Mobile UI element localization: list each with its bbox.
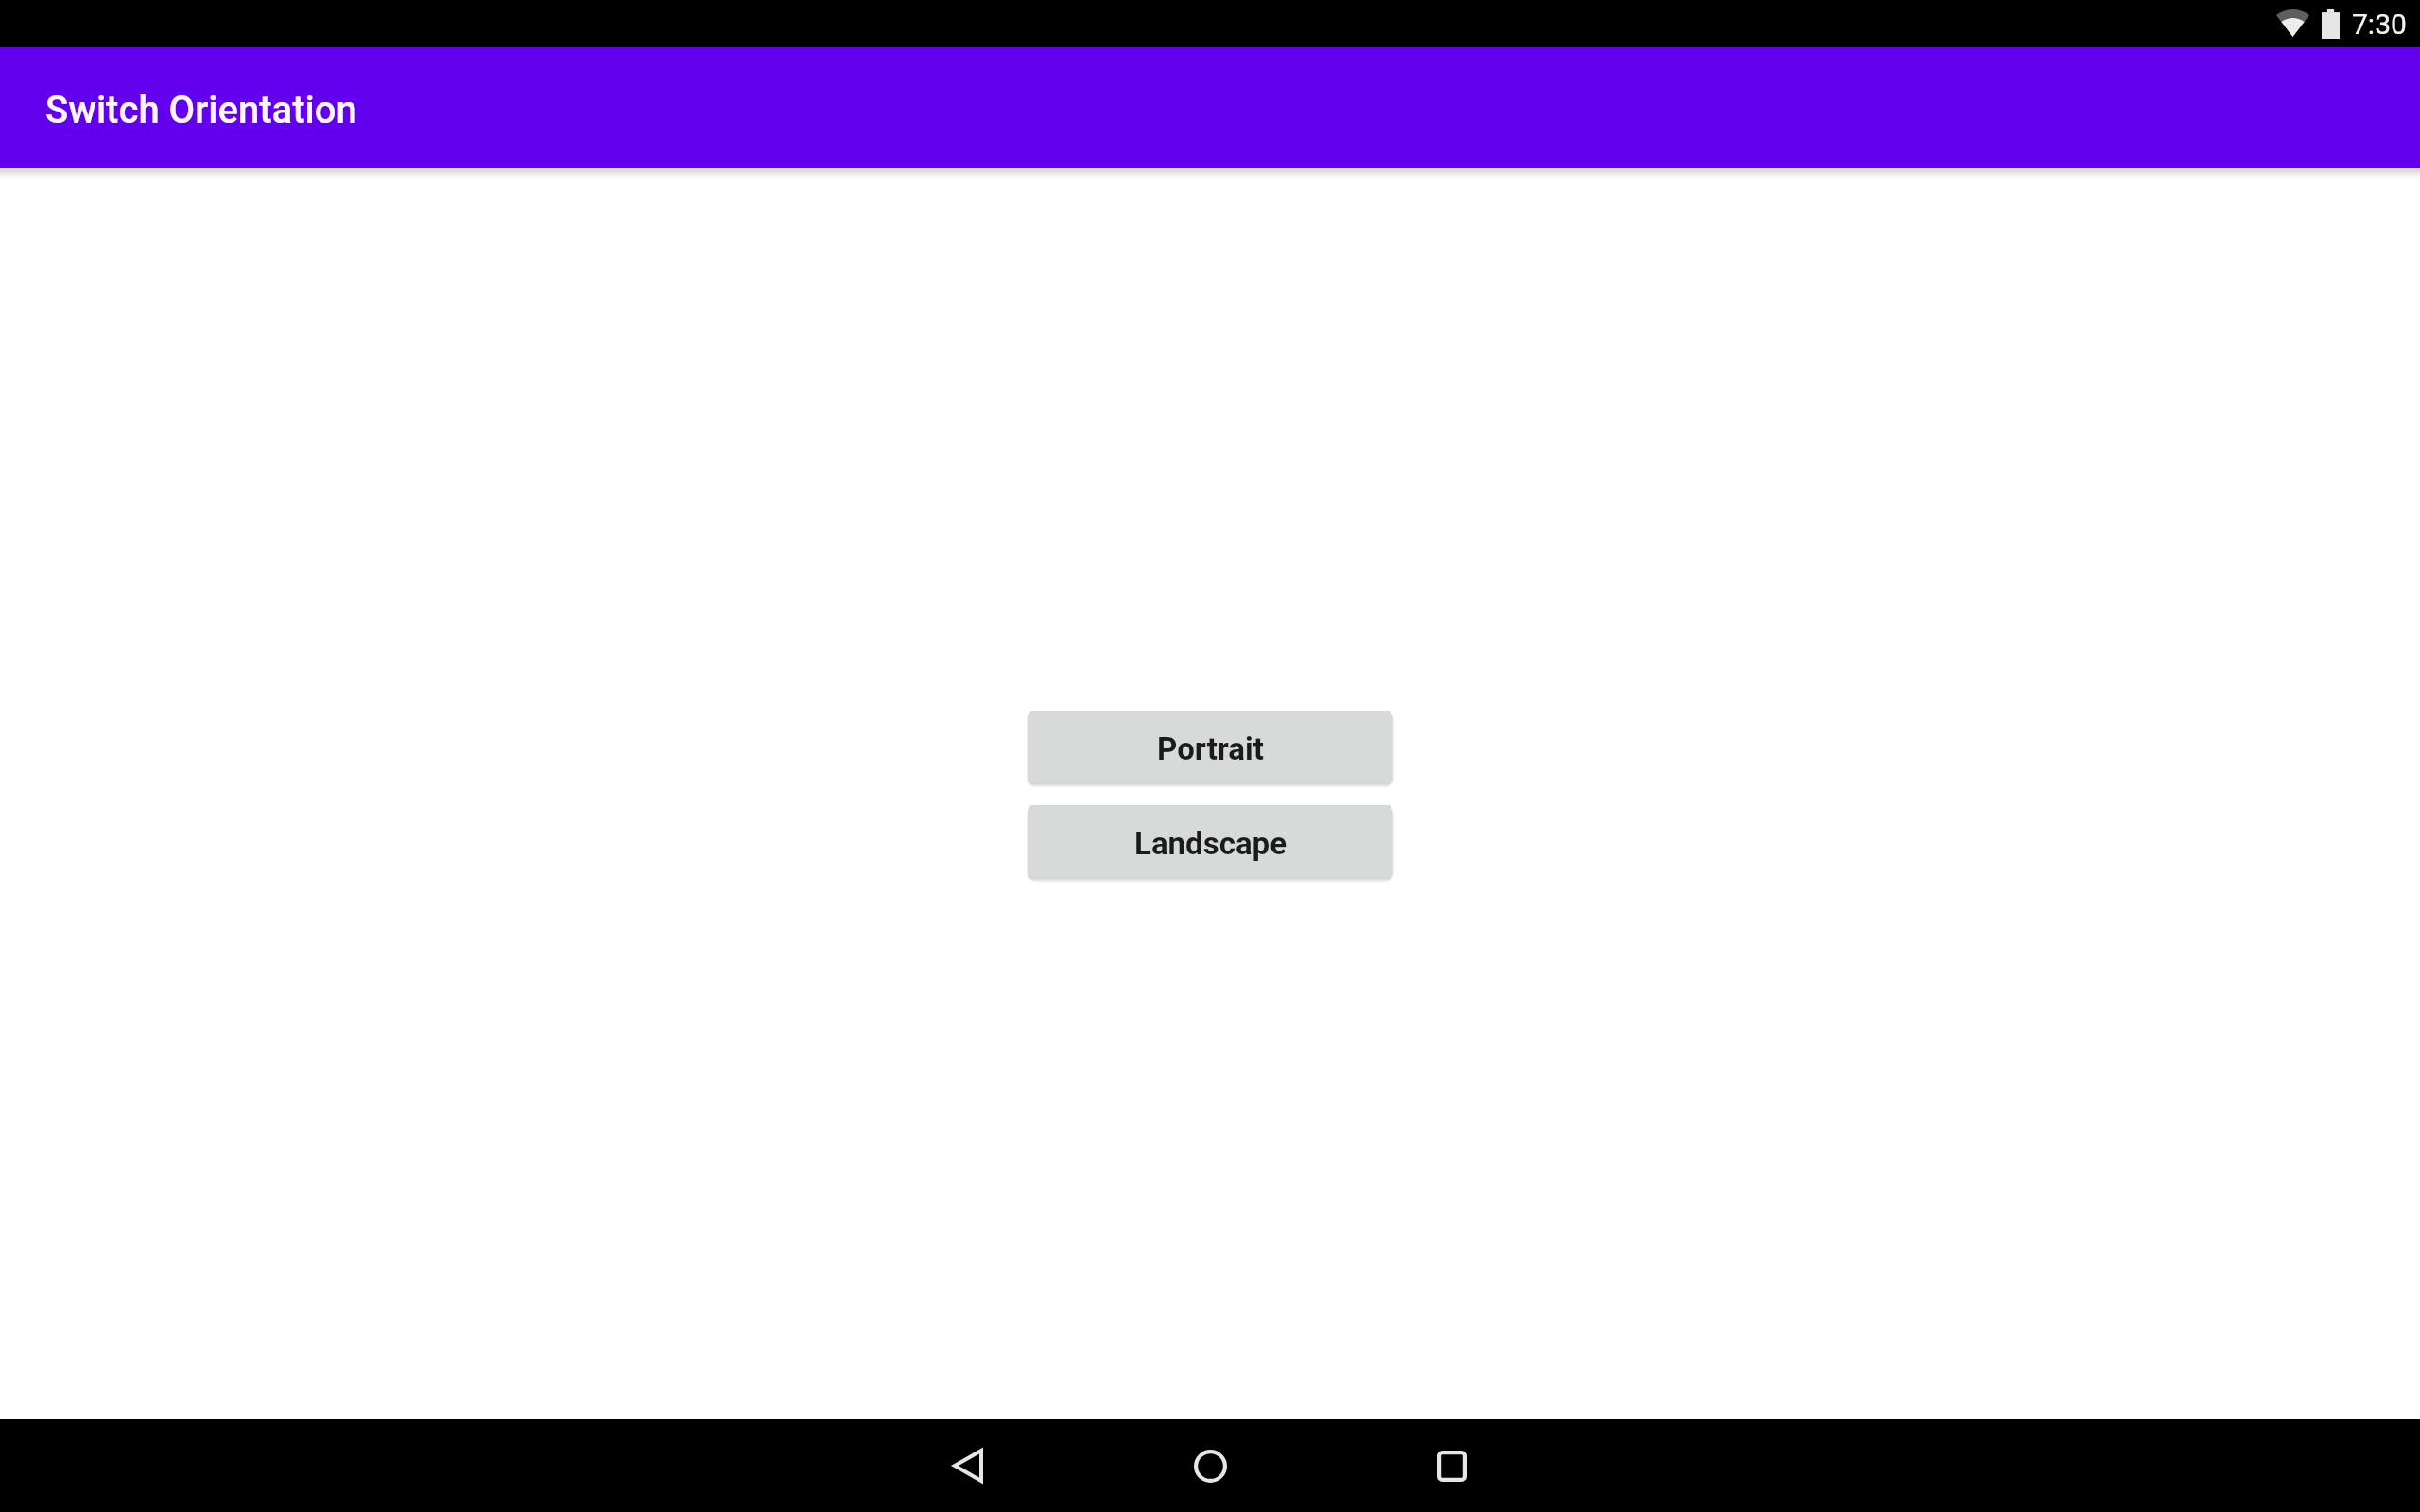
button[interactable]: Recent apps xyxy=(1407,1420,1497,1511)
staticText: 7:30 xyxy=(2352,8,2407,41)
button[interactable]: Landscape xyxy=(1029,805,1391,877)
staticText: Portrait xyxy=(1157,730,1264,767)
staticText: Switch Orientation xyxy=(45,88,357,132)
button[interactable]: Home xyxy=(1165,1420,1255,1511)
staticText: Landscape xyxy=(1134,825,1287,862)
button[interactable]: Back xyxy=(923,1420,1013,1511)
button[interactable]: Portrait xyxy=(1029,711,1391,782)
